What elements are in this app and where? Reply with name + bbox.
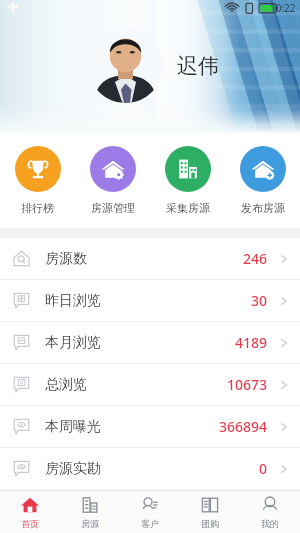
staticText: 房源数 — [45, 250, 87, 268]
staticText: 本月浏览 — [45, 334, 101, 352]
staticText: 366894 — [219, 417, 268, 436]
button[interactable]: 房源数 — [0, 238, 300, 279]
staticText: 0 — [259, 459, 268, 478]
staticText: 采集房源 — [166, 201, 210, 215]
staticText: 房源管理 — [91, 201, 135, 215]
staticText: 迟伟 — [177, 53, 219, 79]
button[interactable]: 团购 — [180, 491, 240, 533]
button[interactable]: 房源实勘 — [0, 448, 300, 489]
button[interactable]: 客户 — [120, 491, 180, 533]
button[interactable]: 采集房源 — [150, 133, 225, 228]
staticText: 房源 — [81, 518, 99, 529]
button[interactable]: 发布房源 — [225, 133, 300, 228]
staticText: 10:22 — [270, 1, 296, 15]
button[interactable]: 房源 — [60, 491, 120, 533]
staticText: 昨日浏览 — [45, 292, 101, 310]
staticText: 团购 — [201, 518, 219, 529]
button[interactable]: 排行榜 — [0, 133, 75, 228]
button[interactable]: 本周曝光 — [0, 406, 300, 447]
staticText: 4189 — [235, 333, 268, 352]
staticText: 房源实勘 — [45, 460, 101, 478]
button[interactable]: 总浏览 — [0, 364, 300, 405]
button[interactable]: 昨日浏览 — [0, 280, 300, 321]
staticText: 10673 — [227, 375, 268, 394]
button[interactable]: 房源管理 — [75, 133, 150, 228]
staticText: 我的 — [261, 518, 279, 529]
button[interactable]: 我的 — [240, 491, 300, 533]
staticText: 排行榜 — [21, 201, 54, 215]
staticText: 首页 — [21, 518, 39, 529]
staticText: 总浏览 — [45, 376, 87, 394]
staticText: 发布房源 — [241, 201, 285, 215]
button[interactable]: 首页 — [0, 491, 60, 533]
staticText: 本周曝光 — [45, 418, 101, 436]
button[interactable]: 本月浏览 — [0, 322, 300, 363]
staticText: 30 — [251, 291, 268, 310]
staticText: 246 — [243, 249, 268, 268]
staticText: 客户 — [141, 518, 159, 529]
